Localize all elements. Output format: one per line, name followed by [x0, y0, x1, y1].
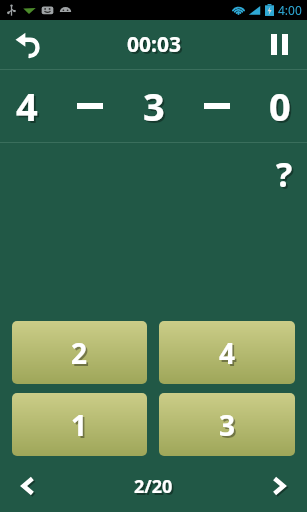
button[interactable]: Pause: [251, 20, 307, 69]
staticText: 1: [71, 406, 88, 444]
staticText: 00:03: [127, 30, 181, 59]
staticText: 4: [219, 334, 236, 372]
button[interactable]: 1: [12, 393, 147, 456]
staticText: 3: [145, 82, 167, 134]
staticText: ?: [276, 151, 293, 197]
staticText: ?: [278, 153, 295, 199]
staticText: 0: [269, 80, 291, 132]
button[interactable]: Next: [251, 464, 307, 508]
staticText: 4: [16, 80, 38, 132]
staticText: 2: [71, 334, 88, 372]
staticText: 2/20: [134, 474, 173, 499]
staticText: 3: [221, 408, 238, 446]
staticText: 2/20: [136, 476, 175, 501]
staticText: 4:00: [278, 2, 302, 18]
staticText: 00:03: [129, 32, 183, 61]
staticText: 0: [271, 82, 293, 134]
staticText: 3: [219, 406, 236, 444]
staticText: 3: [143, 80, 165, 132]
staticText: 2: [73, 336, 90, 374]
button[interactable]: Undo: [0, 20, 56, 69]
staticText: 4: [221, 336, 238, 374]
staticText: 4: [18, 82, 40, 134]
button[interactable]: Previous: [0, 464, 56, 508]
button[interactable]: 2: [12, 321, 147, 384]
button[interactable]: 4: [159, 321, 295, 384]
staticText: 1: [73, 408, 90, 446]
button[interactable]: 3: [159, 393, 295, 456]
